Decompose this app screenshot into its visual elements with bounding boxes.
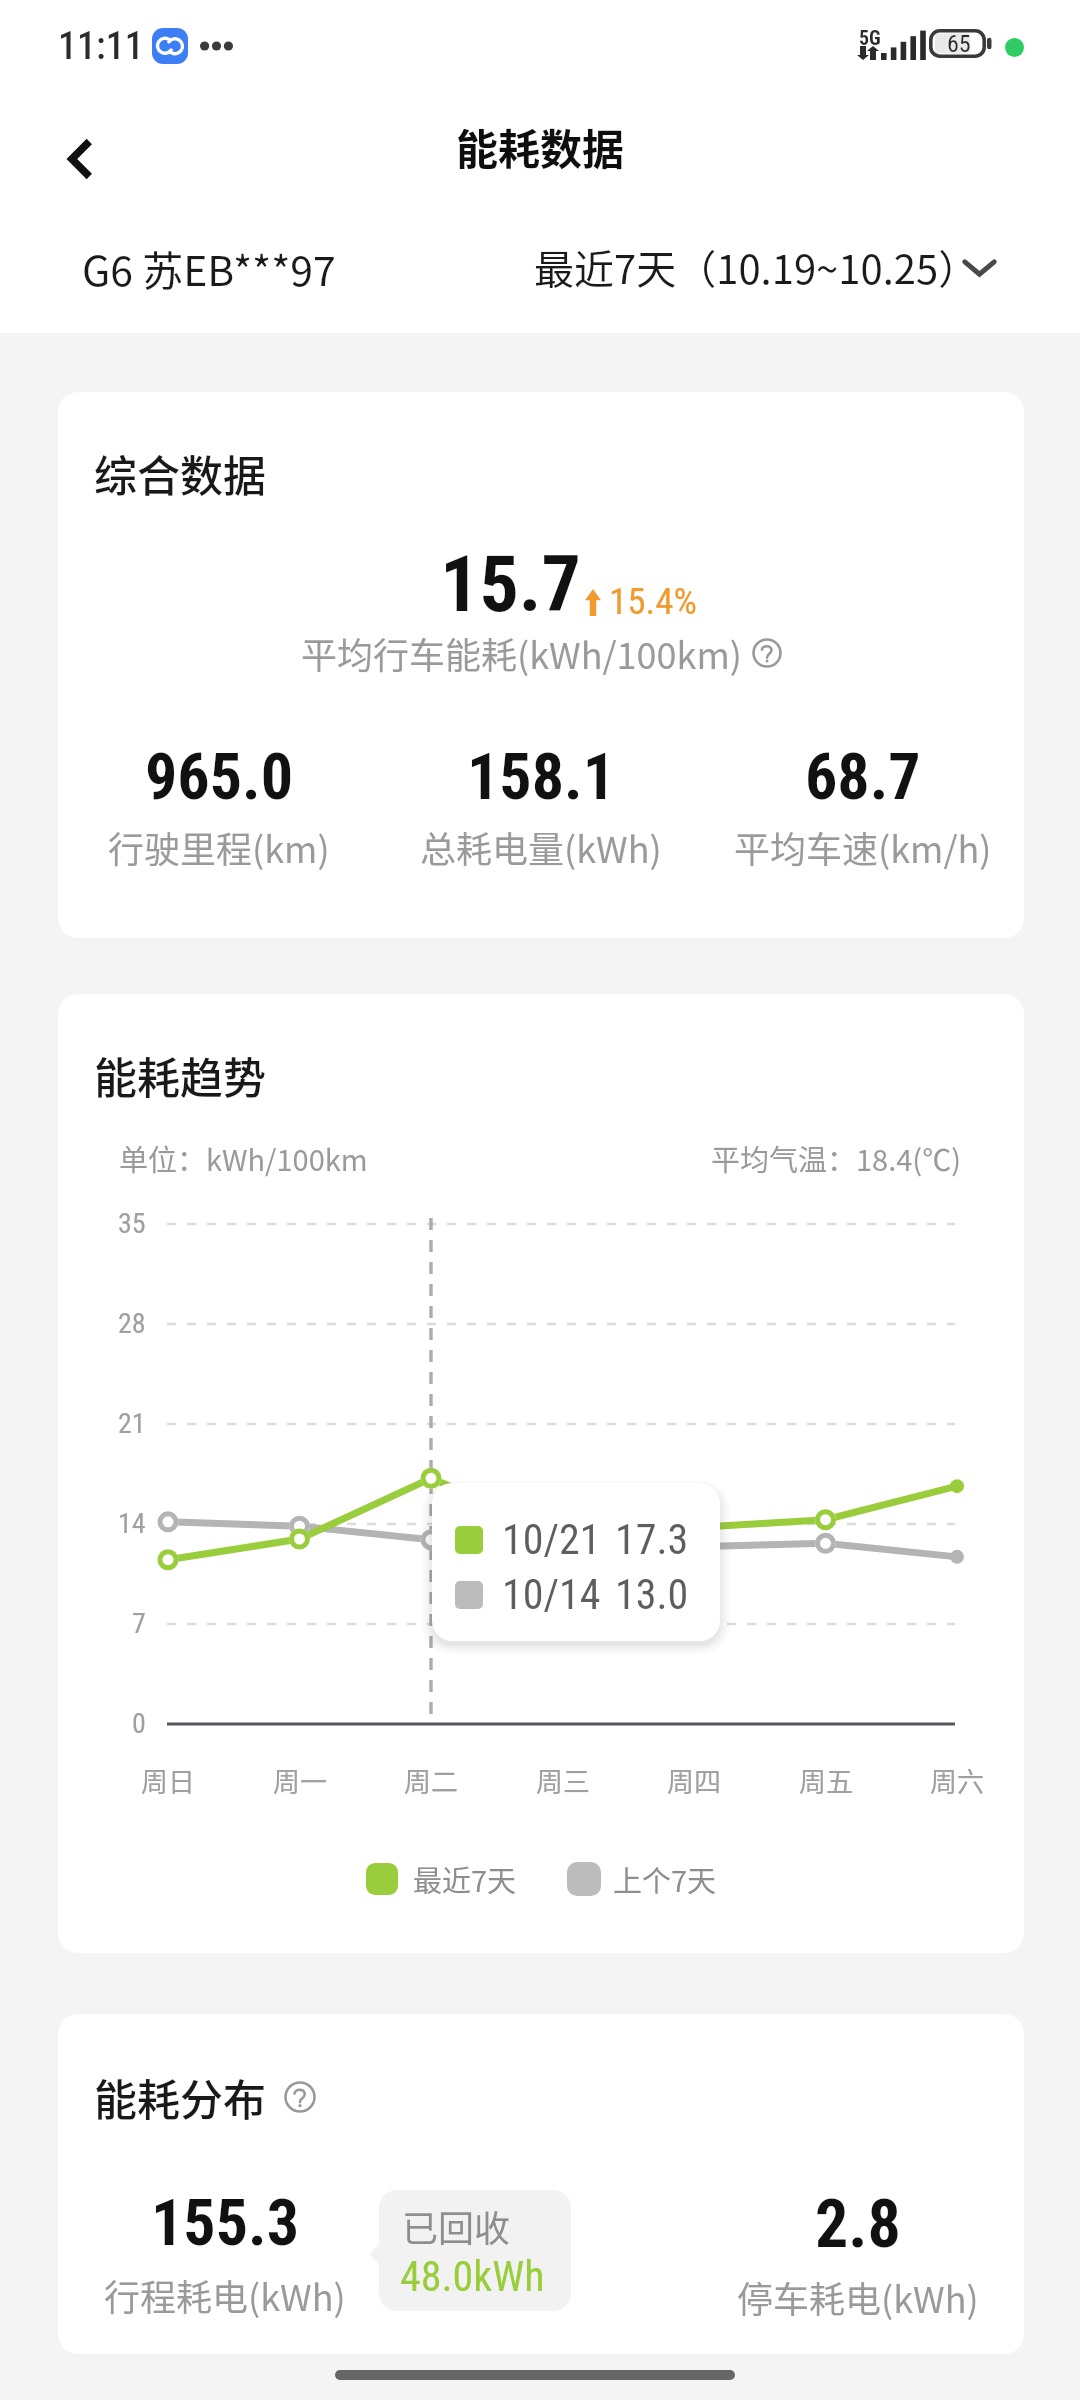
staticText: 行驶里程(km) <box>108 821 330 873</box>
staticText: 65 <box>947 30 971 58</box>
staticText: 周日 <box>141 1761 195 1800</box>
staticText: 最近7天 <box>413 1858 517 1900</box>
staticText: 28 <box>118 1307 146 1340</box>
staticText: 能耗分布 <box>94 2066 266 2128</box>
staticText: 能耗数据 <box>456 116 625 177</box>
staticText: 最近7天（10.19~10.25） <box>534 238 979 296</box>
staticText: 综合数据 <box>94 442 266 504</box>
staticText: 15.4% <box>609 580 697 623</box>
staticText: 0 <box>132 1707 146 1740</box>
staticText: 965.0 <box>145 740 293 815</box>
staticText: 7 <box>132 1607 146 1640</box>
staticText: 行程耗电(kWh) <box>104 2269 346 2321</box>
staticText: 10/21 <box>502 1515 601 1564</box>
staticText: 周三 <box>536 1761 590 1800</box>
staticText: 13.0 <box>615 1570 689 1619</box>
staticText: 17.3 <box>615 1515 689 1564</box>
staticText: 35 <box>118 1207 146 1240</box>
staticText: 单位：kWh/100km <box>119 1137 368 1179</box>
staticText: 155.3 <box>151 2186 299 2261</box>
staticText: 平均气温：18.4(℃) <box>711 1137 961 1179</box>
staticText: 14 <box>118 1507 146 1540</box>
staticText: 平均车速(km/h) <box>734 821 992 873</box>
staticText: 5G <box>859 26 881 49</box>
staticText: 平均行车能耗(kWh/100km) <box>301 627 742 679</box>
staticText: 21 <box>118 1407 146 1440</box>
button[interactable]: Back <box>40 118 122 200</box>
staticText: 周二 <box>404 1761 458 1800</box>
staticText: 停车耗电(kWh) <box>737 2271 979 2323</box>
staticText: 已回收 <box>402 2200 511 2252</box>
staticText: 158.1 <box>467 740 615 815</box>
staticText: 上个7天 <box>613 1858 717 1900</box>
staticText: 68.7 <box>805 740 921 815</box>
staticText: 10/14 <box>502 1570 601 1619</box>
staticText: 周六 <box>930 1761 984 1800</box>
staticText: 11:11 <box>58 24 144 69</box>
button[interactable]: 最近7天（10.19~10.25） <box>520 221 1020 333</box>
staticText: 周一 <box>273 1761 327 1800</box>
staticText: 周五 <box>799 1761 853 1800</box>
staticText: 周四 <box>667 1761 721 1800</box>
staticText: 15.7 <box>440 539 581 630</box>
staticText: 48.0kWh <box>400 2252 545 2301</box>
staticText: 2.8 <box>815 2186 901 2263</box>
staticText: G6 苏EB***97 <box>82 238 336 297</box>
staticText: 总耗电量(kWh) <box>420 821 662 873</box>
staticText: 能耗趋势 <box>94 1044 266 1106</box>
